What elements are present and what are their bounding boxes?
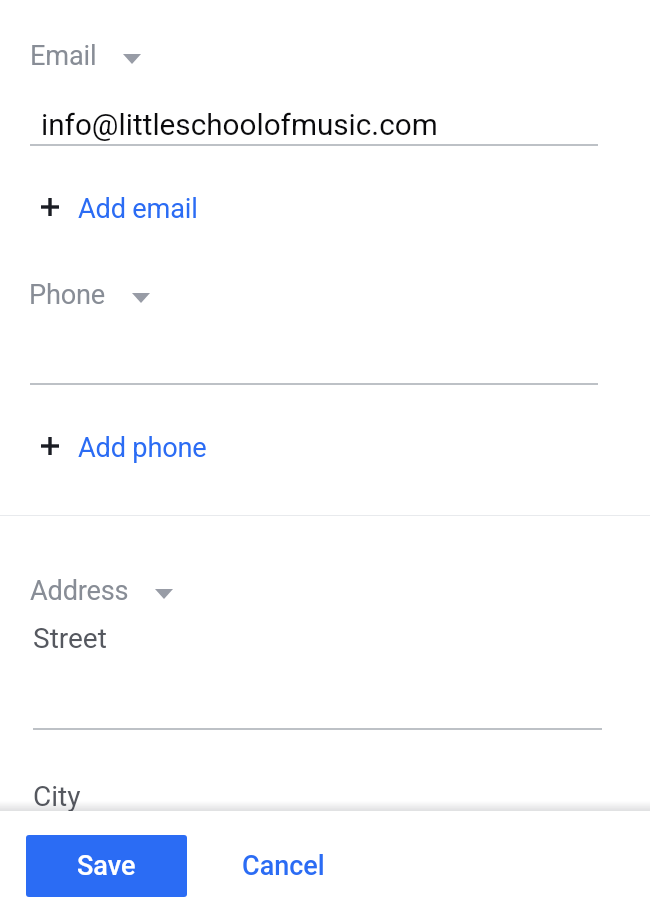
staticText: Address [30, 575, 129, 607]
staticText: Street [33, 622, 107, 655]
button[interactable]: Save [26, 835, 187, 897]
button[interactable]: Cancel [228, 835, 339, 897]
button[interactable]: Add email [30, 183, 214, 235]
button[interactable]: Email type [18, 36, 153, 76]
button[interactable]: Phone type [17, 275, 162, 315]
staticText: info@littleschoolofmusic.com [41, 107, 438, 142]
button[interactable]: City [22, 772, 602, 812]
staticText: Phone [29, 279, 106, 311]
button[interactable]: Phone number [30, 334, 598, 384]
staticText: Add phone [78, 432, 207, 464]
button[interactable]: Add phone [30, 422, 223, 474]
staticText: Add email [78, 193, 198, 225]
button[interactable]: info@littleschoolofmusic.com [30, 95, 598, 146]
staticText: City [33, 780, 81, 813]
button[interactable]: Address type [18, 571, 185, 611]
button[interactable]: Street [22, 614, 602, 729]
staticText: Email [30, 40, 97, 72]
staticText: Cancel [242, 850, 325, 882]
staticText: Save [77, 850, 136, 882]
